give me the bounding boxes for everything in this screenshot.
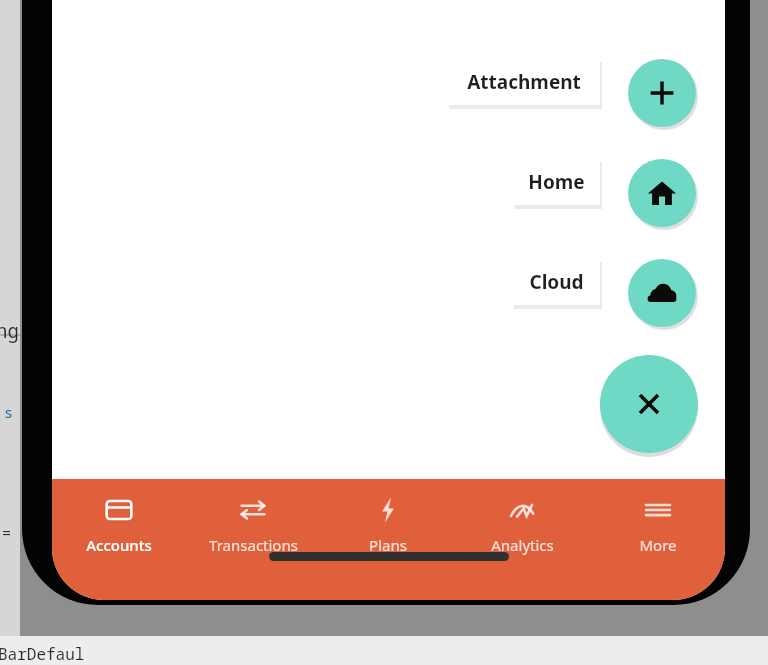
staticText: = <box>2 522 12 542</box>
staticText: s <box>4 402 14 422</box>
button[interactable]: Accounts <box>52 479 186 555</box>
staticText: Cloud <box>529 269 584 295</box>
button[interactable]: Close <box>600 355 698 453</box>
button[interactable]: Plans <box>320 479 455 555</box>
staticText: Home <box>528 169 585 195</box>
button[interactable]: Cloud <box>512 258 600 305</box>
staticText: Analytics <box>491 535 554 555</box>
button[interactable]: Home <box>628 159 696 227</box>
staticText: More <box>639 535 677 555</box>
button[interactable]: More <box>590 479 725 555</box>
staticText: ng <box>0 318 19 344</box>
button[interactable]: Attachment <box>447 58 600 105</box>
staticText: Plans <box>369 535 407 555</box>
staticText: Accounts <box>86 535 152 555</box>
staticText: BarDefaul <box>0 643 85 665</box>
button[interactable]: Analytics <box>455 479 590 555</box>
button[interactable]: Home <box>512 158 600 205</box>
staticText: Transactions <box>209 535 298 555</box>
button[interactable]: Transactions <box>186 479 320 555</box>
button[interactable]: Attachment <box>628 59 696 127</box>
button[interactable]: Cloud <box>628 259 696 327</box>
staticText: Attachment <box>467 69 581 95</box>
